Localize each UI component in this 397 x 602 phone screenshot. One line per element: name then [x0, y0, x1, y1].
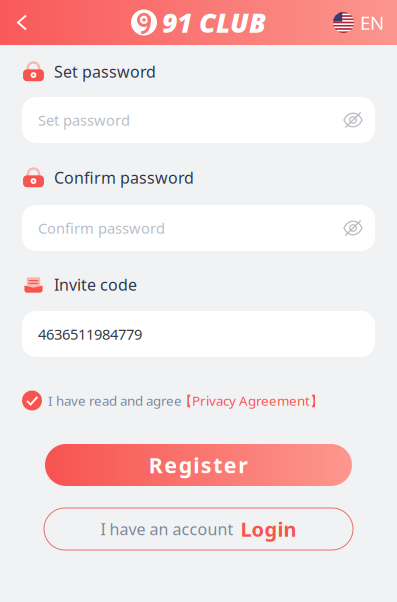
staticText: 【Privacy Agreement】	[179, 392, 323, 409]
staticText: Confirm password	[54, 167, 194, 188]
button[interactable]: I have an account	[44, 508, 353, 550]
staticText: 91 CLUB	[162, 5, 266, 40]
button[interactable]: Back	[0, 0, 40, 45]
staticText: 4636511984779	[38, 324, 142, 344]
staticText: Login	[240, 516, 296, 542]
staticText: I have an account	[100, 518, 233, 540]
button[interactable]: EN	[319, 0, 397, 45]
staticText: Register	[149, 451, 248, 479]
staticText: I have read and agree	[48, 392, 182, 409]
staticText: Confirm password	[38, 218, 165, 238]
staticText: EN	[360, 10, 384, 35]
staticText: Invite code	[54, 274, 137, 295]
button[interactable]: I have read and agree	[22, 390, 375, 411]
staticText: Set password	[54, 61, 156, 82]
button[interactable]: Register	[45, 444, 352, 486]
staticText: Set password	[38, 110, 130, 130]
button[interactable]: Toggle password visibility	[339, 214, 367, 242]
button[interactable]: Toggle password visibility	[339, 106, 367, 134]
